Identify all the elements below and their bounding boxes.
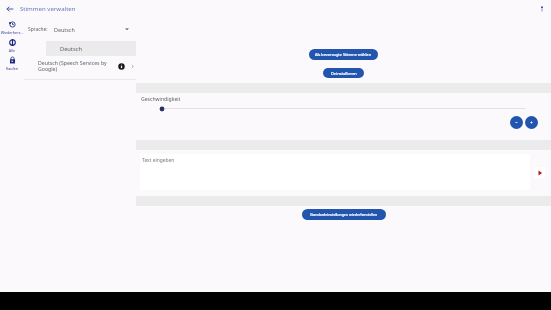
button[interactable]: Increase speed <box>525 116 538 129</box>
staticText: Deutsch <box>54 26 75 33</box>
button[interactable]: Standardeinstellungen wiederherstellen <box>302 209 386 220</box>
staticText: Alle <box>0 48 24 53</box>
staticText: Deutsch (Speech Services by Google) <box>38 59 118 73</box>
button[interactable]: Back <box>3 2 16 15</box>
button[interactable]: Sprache: <box>28 23 134 35</box>
staticText: Sprache: <box>28 26 48 33</box>
button[interactable]: More options <box>535 2 549 16</box>
button[interactable]: Als bevorzugte Stimme wählen <box>309 49 378 60</box>
button[interactable]: Alle <box>0 39 24 55</box>
button[interactable]: Deutsch <box>46 41 136 56</box>
button[interactable]: Deutsch (Speech Services by Google) <box>24 57 136 77</box>
button[interactable]: Play <box>534 167 545 178</box>
button[interactable]: Wiederhers... <box>0 21 24 37</box>
staticText: Stimmen verwalten <box>20 4 76 12</box>
staticText: Kaufen <box>0 66 24 71</box>
button[interactable]: Kaufen <box>0 57 24 73</box>
staticText: Wiederhers... <box>0 30 24 35</box>
button[interactable]: Decrease speed <box>510 116 523 129</box>
staticText: Deutsch <box>60 45 82 53</box>
staticText: Geschwindigkeit <box>141 96 181 103</box>
staticText: Standardeinstellungen wiederherstellen <box>310 212 378 217</box>
button[interactable]: Text eingeben <box>140 154 530 190</box>
staticText: Text eingeben <box>142 157 175 164</box>
staticText: Deinstallieren <box>331 71 357 76</box>
button[interactable]: Deinstallieren <box>323 68 364 78</box>
staticText: Als bevorzugte Stimme wählen <box>315 52 372 57</box>
